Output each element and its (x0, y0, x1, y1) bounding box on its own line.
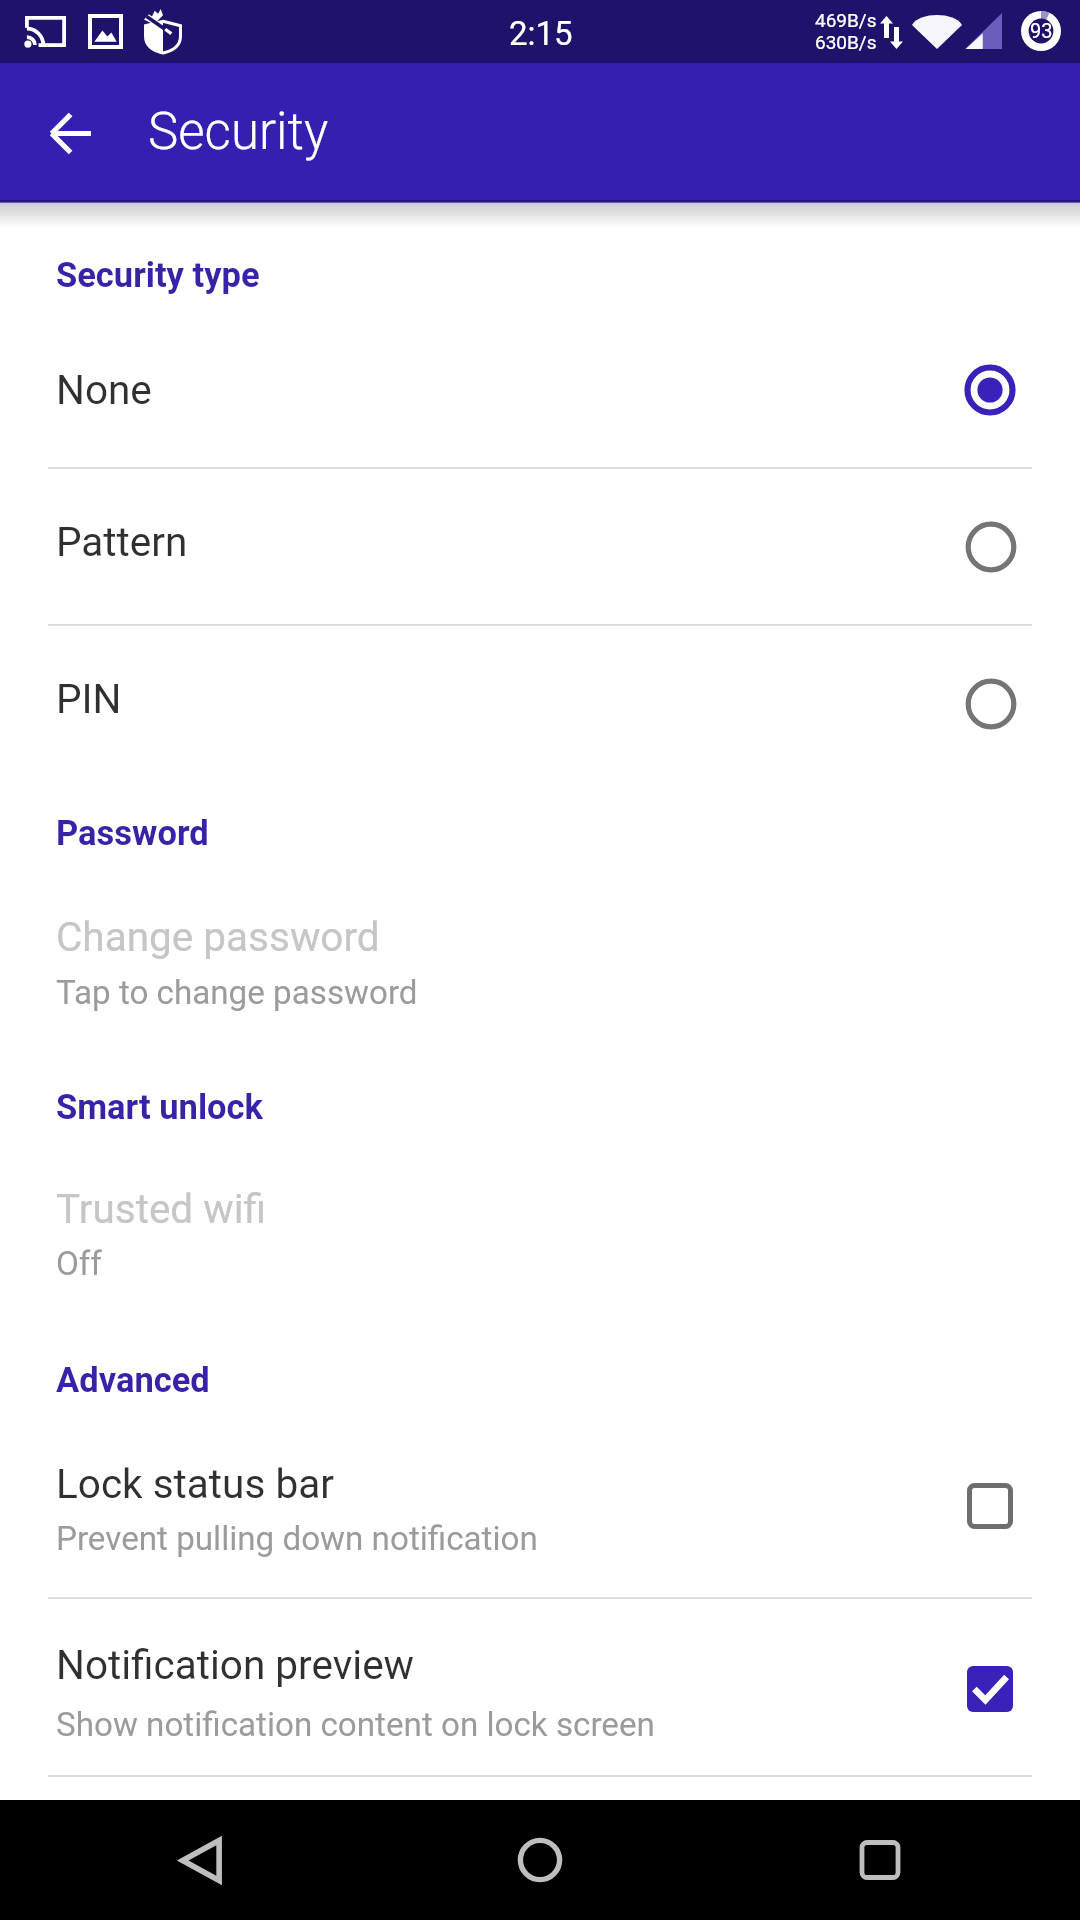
staticText: None (56, 366, 152, 413)
staticText: Pattern (56, 518, 188, 565)
button[interactable]: PIN (0, 626, 1080, 781)
staticText: Tap to change password (56, 973, 418, 1012)
button[interactable]: Back (141, 1800, 261, 1920)
button[interactable]: Notification preview, on (948, 1647, 1032, 1731)
staticText: PIN (56, 675, 122, 722)
staticText: Advanced (56, 1360, 210, 1400)
button[interactable]: Lock status bar (0, 1430, 1080, 1597)
staticText: Password (56, 813, 209, 853)
staticText: Lock status bar (56, 1460, 334, 1507)
button[interactable]: None (0, 311, 1080, 467)
button[interactable]: Change password (0, 881, 1080, 1046)
button[interactable]: Lock status bar, off (948, 1464, 1032, 1548)
staticText: 630B/s (815, 31, 877, 53)
button[interactable]: Home (480, 1800, 600, 1920)
button[interactable]: Notification preview (0, 1599, 1080, 1775)
button[interactable]: Trusted wifi (0, 1153, 1080, 1318)
button[interactable]: Recents (820, 1800, 940, 1920)
staticText: Security type (56, 255, 260, 295)
staticText: Notification preview (56, 1641, 415, 1688)
staticText: Change password (56, 913, 380, 960)
staticText: Smart unlock (56, 1087, 263, 1127)
button[interactable]: None selected (948, 348, 1032, 432)
staticText: Prevent pulling down notification (56, 1519, 538, 1558)
button[interactable]: Pattern (0, 469, 1080, 624)
staticText: Trusted wifi (56, 1185, 266, 1232)
staticText: 2:15 (509, 14, 573, 53)
staticText: 469B/s (815, 9, 877, 31)
button[interactable]: Back (34, 97, 106, 169)
button[interactable]: Pattern (949, 505, 1033, 589)
staticText: Off (56, 1244, 102, 1283)
staticText: Security (148, 102, 329, 162)
button[interactable]: PIN (949, 662, 1033, 746)
staticText: Show notification content on lock screen (56, 1705, 655, 1744)
staticText: 93 (1030, 19, 1053, 42)
